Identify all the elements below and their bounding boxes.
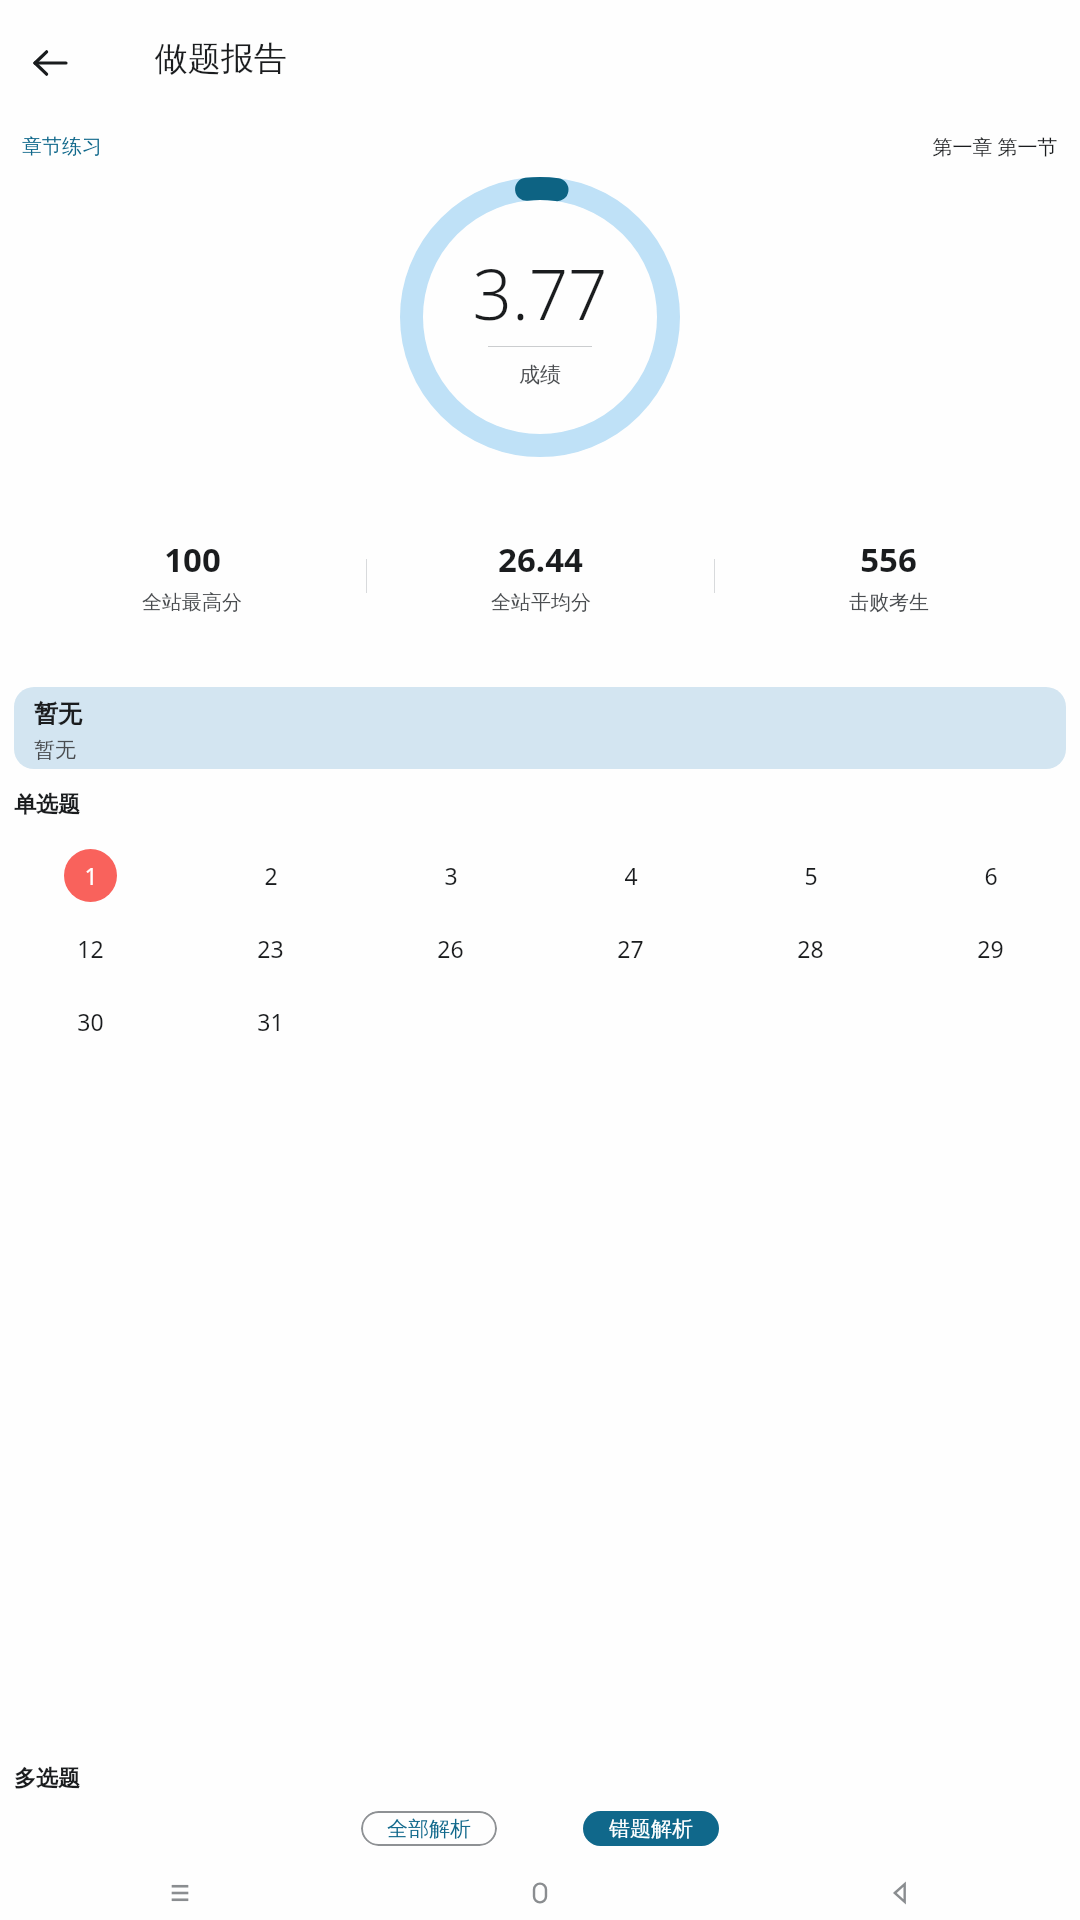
- button[interactable]: 4: [604, 849, 657, 902]
- button[interactable]: 错题解析: [583, 1811, 719, 1846]
- staticText: 12: [77, 933, 104, 964]
- button[interactable]: 29: [964, 922, 1017, 975]
- button[interactable]: Back: [20, 33, 80, 93]
- staticText: 29: [977, 933, 1004, 964]
- button[interactable]: 28: [784, 922, 837, 975]
- button[interactable]: 31: [244, 995, 297, 1048]
- staticText: 5: [804, 860, 818, 891]
- button[interactable]: 6: [964, 849, 1017, 902]
- staticText: 4: [624, 860, 638, 891]
- button[interactable]: Back: [720, 1866, 1080, 1920]
- button[interactable]: 暂无: [14, 687, 1066, 769]
- button[interactable]: 2: [244, 849, 297, 902]
- button[interactable]: 12: [64, 922, 117, 975]
- staticText: 31: [257, 1006, 284, 1037]
- button[interactable]: 556: [715, 537, 1062, 615]
- staticText: 27: [617, 933, 644, 964]
- button[interactable]: 23: [244, 922, 297, 975]
- button[interactable]: Home: [360, 1866, 720, 1920]
- staticText: 错题解析: [609, 1816, 693, 1842]
- staticText: 暂无: [34, 737, 76, 763]
- staticText: 26: [437, 933, 464, 964]
- staticText: 多选题: [14, 1765, 80, 1793]
- staticText: 做题报告: [155, 38, 287, 80]
- button[interactable]: 30: [64, 995, 117, 1048]
- staticText: 26.44: [498, 537, 583, 582]
- staticText: 3: [444, 860, 458, 891]
- staticText: 2: [264, 860, 278, 891]
- button[interactable]: 全部解析: [361, 1811, 497, 1846]
- staticText: 成绩: [519, 362, 561, 388]
- staticText: 556: [860, 537, 917, 582]
- staticText: 3.77: [472, 246, 608, 340]
- button[interactable]: 1: [64, 849, 117, 902]
- staticText: 全站平均分: [491, 590, 591, 615]
- button[interactable]: 章节练习: [22, 134, 102, 159]
- button[interactable]: 27: [604, 922, 657, 975]
- staticText: 1: [84, 860, 98, 891]
- staticText: 全部解析: [387, 1816, 471, 1842]
- button[interactable]: 26.44: [367, 537, 714, 615]
- staticText: 暂无: [34, 699, 82, 729]
- staticText: 章节练习: [22, 134, 102, 159]
- button[interactable]: Recents: [0, 1866, 360, 1920]
- staticText: 第一章 第一节: [932, 133, 1058, 160]
- button[interactable]: 3: [424, 849, 477, 902]
- staticText: 单选题: [14, 791, 80, 819]
- button[interactable]: 100: [18, 537, 366, 615]
- staticText: 击败考生: [849, 590, 929, 615]
- staticText: 30: [77, 1006, 104, 1037]
- staticText: 6: [984, 860, 998, 891]
- staticText: 100: [164, 537, 221, 582]
- button[interactable]: 26: [424, 922, 477, 975]
- staticText: 23: [257, 933, 284, 964]
- staticText: 全站最高分: [142, 590, 242, 615]
- button[interactable]: 5: [784, 849, 837, 902]
- staticText: 28: [797, 933, 824, 964]
